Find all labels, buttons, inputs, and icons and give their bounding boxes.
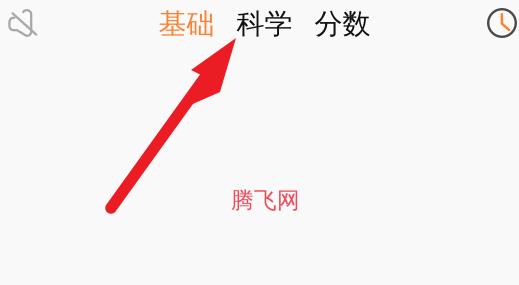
button[interactable]: History [485, 1, 519, 45]
staticText: 科学 [236, 7, 292, 41]
button[interactable]: 分数 [303, 0, 381, 49]
staticText: 腾飞网 [231, 187, 300, 214]
button[interactable]: 科学 [225, 0, 303, 49]
staticText: 基础 [158, 7, 214, 41]
button[interactable]: 基础 [147, 0, 225, 49]
button[interactable]: Mute [0, 1, 44, 45]
staticText: 分数 [314, 7, 370, 41]
